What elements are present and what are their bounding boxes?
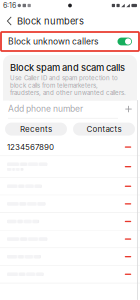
staticText: Recents: [20, 124, 52, 134]
button[interactable]: [0, 178, 140, 195]
button[interactable]: [0, 195, 140, 212]
staticText: Block spam and scam calls: [10, 62, 125, 73]
button[interactable]: [0, 213, 140, 230]
button[interactable]: 1234567890: [0, 139, 140, 156]
button[interactable]: Recents: [5, 123, 67, 136]
staticText: Add phone number: [8, 104, 83, 114]
button[interactable]: [0, 248, 140, 265]
button[interactable]: [0, 231, 140, 248]
button[interactable]: Contacts: [73, 123, 135, 136]
staticText: Use Caller ID and spam protection to blo…: [10, 74, 126, 97]
staticText: Block numbers: [17, 15, 84, 27]
button[interactable]: Block unknown callers: [1, 32, 139, 51]
staticText: Block unknown callers: [8, 36, 99, 47]
staticText: 1234567890: [7, 142, 54, 152]
staticText: Contacts: [86, 124, 121, 134]
button[interactable]: [0, 266, 140, 283]
button[interactable]: Back: [2, 12, 17, 30]
button[interactable]: Add: [122, 104, 135, 115]
button[interactable]: [0, 156, 140, 177]
staticText: 6:16: [3, 1, 16, 10]
